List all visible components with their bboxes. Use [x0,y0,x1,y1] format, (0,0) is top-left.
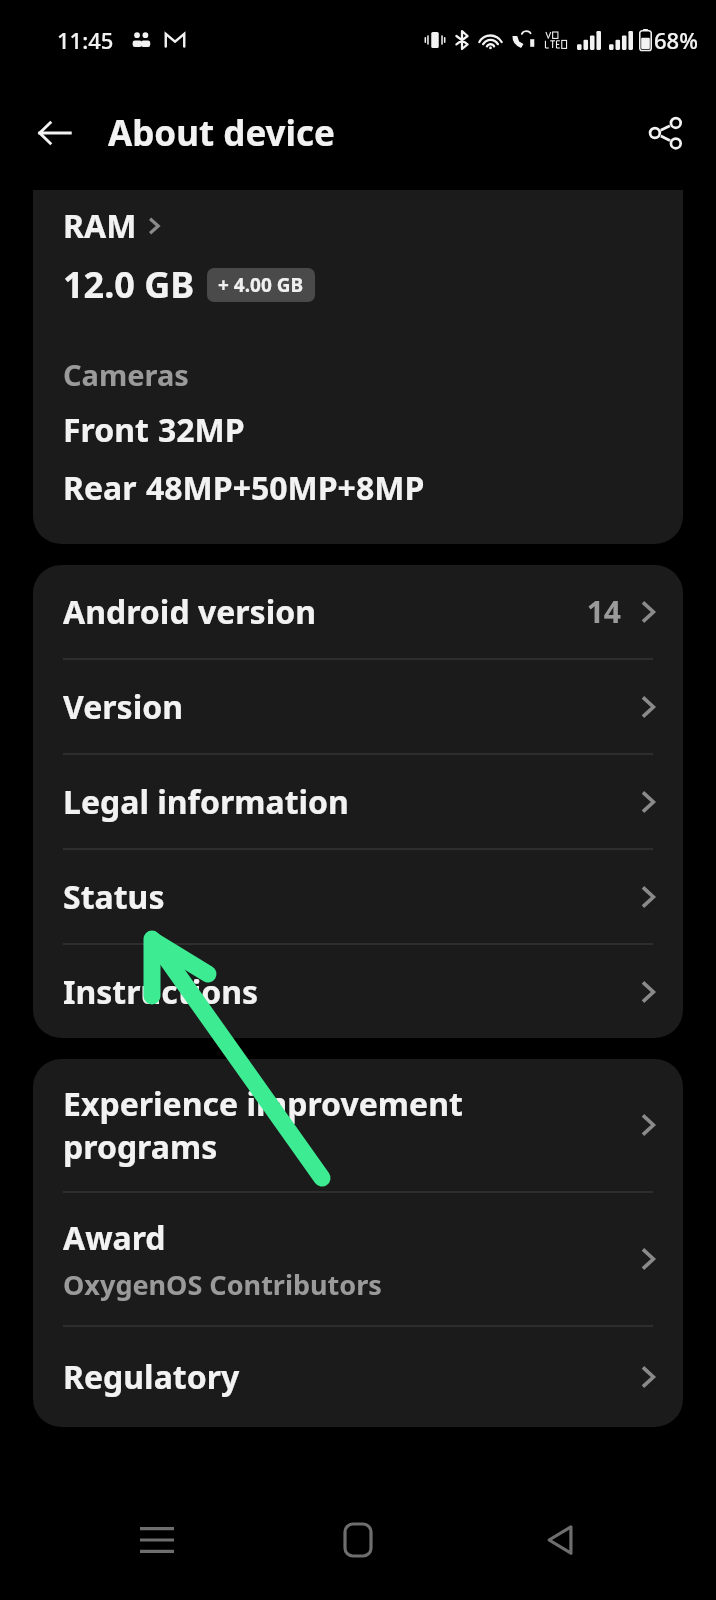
button[interactable]: Android version [33,565,683,658]
staticText: Front [63,408,149,452]
button[interactable]: Version [33,660,683,753]
button[interactable]: Award [33,1193,683,1325]
staticText: OxygenOS Contributors [63,1266,382,1303]
button[interactable]: Home [313,1495,403,1585]
staticText: Instructions [63,970,259,1014]
staticText: Regulatory [63,1355,240,1399]
staticText: 32MP [158,408,245,452]
staticText: Experience improvement programs [63,1082,463,1168]
button[interactable]: Legal information [33,755,683,848]
staticText: Version [63,685,184,729]
staticText: Rear [63,466,137,510]
staticText: 12.0 GB [63,260,195,309]
staticText: + 4.00 GB [218,272,304,298]
staticText: 68% [654,25,698,55]
button[interactable]: Back [22,100,88,166]
button[interactable]: Recent apps [112,1495,202,1585]
staticText: 11:45 [57,25,114,55]
button[interactable]: Status [33,850,683,943]
button[interactable]: Experience improvement programs [33,1059,683,1191]
button[interactable]: Regulatory [33,1327,683,1427]
staticText: Status [63,875,165,919]
button[interactable]: Instructions [33,945,683,1038]
staticText: RAM [63,204,137,248]
button[interactable]: Back [515,1495,605,1585]
staticText: Award [63,1216,166,1260]
staticText: 14 [586,591,621,632]
button[interactable]: Share [632,100,698,166]
staticText: Legal information [63,780,349,824]
staticText: Android version [63,590,317,634]
staticText: About device [108,109,335,157]
staticText: 48MP+50MP+8MP [146,466,425,510]
staticText: Cameras [63,355,189,394]
